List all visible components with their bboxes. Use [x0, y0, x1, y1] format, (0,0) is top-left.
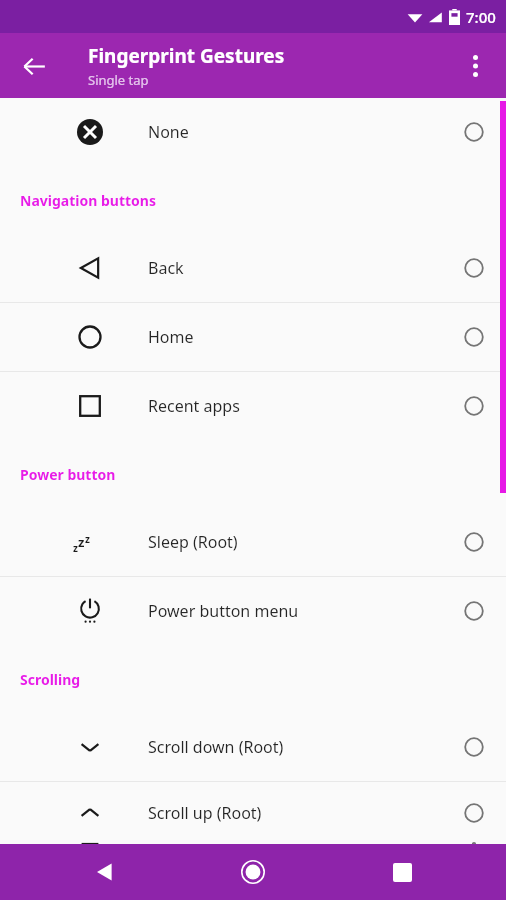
- staticText: Scroll up (Root): [148, 802, 442, 824]
- button[interactable]: Recent apps: [0, 372, 506, 440]
- button[interactable]: Back: [10, 42, 58, 90]
- button[interactable]: Back: [59, 844, 149, 900]
- button[interactable]: Home: [0, 303, 506, 371]
- staticText: Sleep (Root): [148, 531, 442, 553]
- staticText: Back: [148, 257, 442, 279]
- button[interactable]: Power button menu: [0, 577, 506, 645]
- button[interactable]: Scroll down (Root): [0, 713, 506, 781]
- staticText: z: [73, 541, 78, 555]
- staticText: Recent apps: [148, 395, 442, 417]
- staticText: Single tap: [88, 71, 149, 89]
- button[interactable]: More options: [452, 43, 498, 89]
- staticText: Home: [148, 326, 442, 348]
- staticText: z: [78, 533, 85, 551]
- button[interactable]: Back: [0, 234, 506, 302]
- button[interactable]: Home: [208, 844, 298, 900]
- button[interactable]: z: [0, 508, 506, 576]
- button[interactable]: Recent apps: [357, 844, 447, 900]
- staticText: Scrolling: [20, 670, 81, 689]
- staticText: Power button: [20, 465, 116, 484]
- staticText: None: [148, 121, 442, 143]
- staticText: Scroll down (Root): [148, 736, 442, 758]
- staticText: Navigation buttons: [20, 191, 156, 210]
- staticText: 7:00: [466, 7, 496, 27]
- staticText: z: [85, 532, 90, 546]
- button[interactable]: Scroll up (Root): [0, 782, 506, 844]
- button[interactable]: None: [0, 98, 506, 166]
- staticText: Power button menu: [148, 600, 442, 622]
- staticText: Fingerprint Gestures: [88, 43, 285, 69]
